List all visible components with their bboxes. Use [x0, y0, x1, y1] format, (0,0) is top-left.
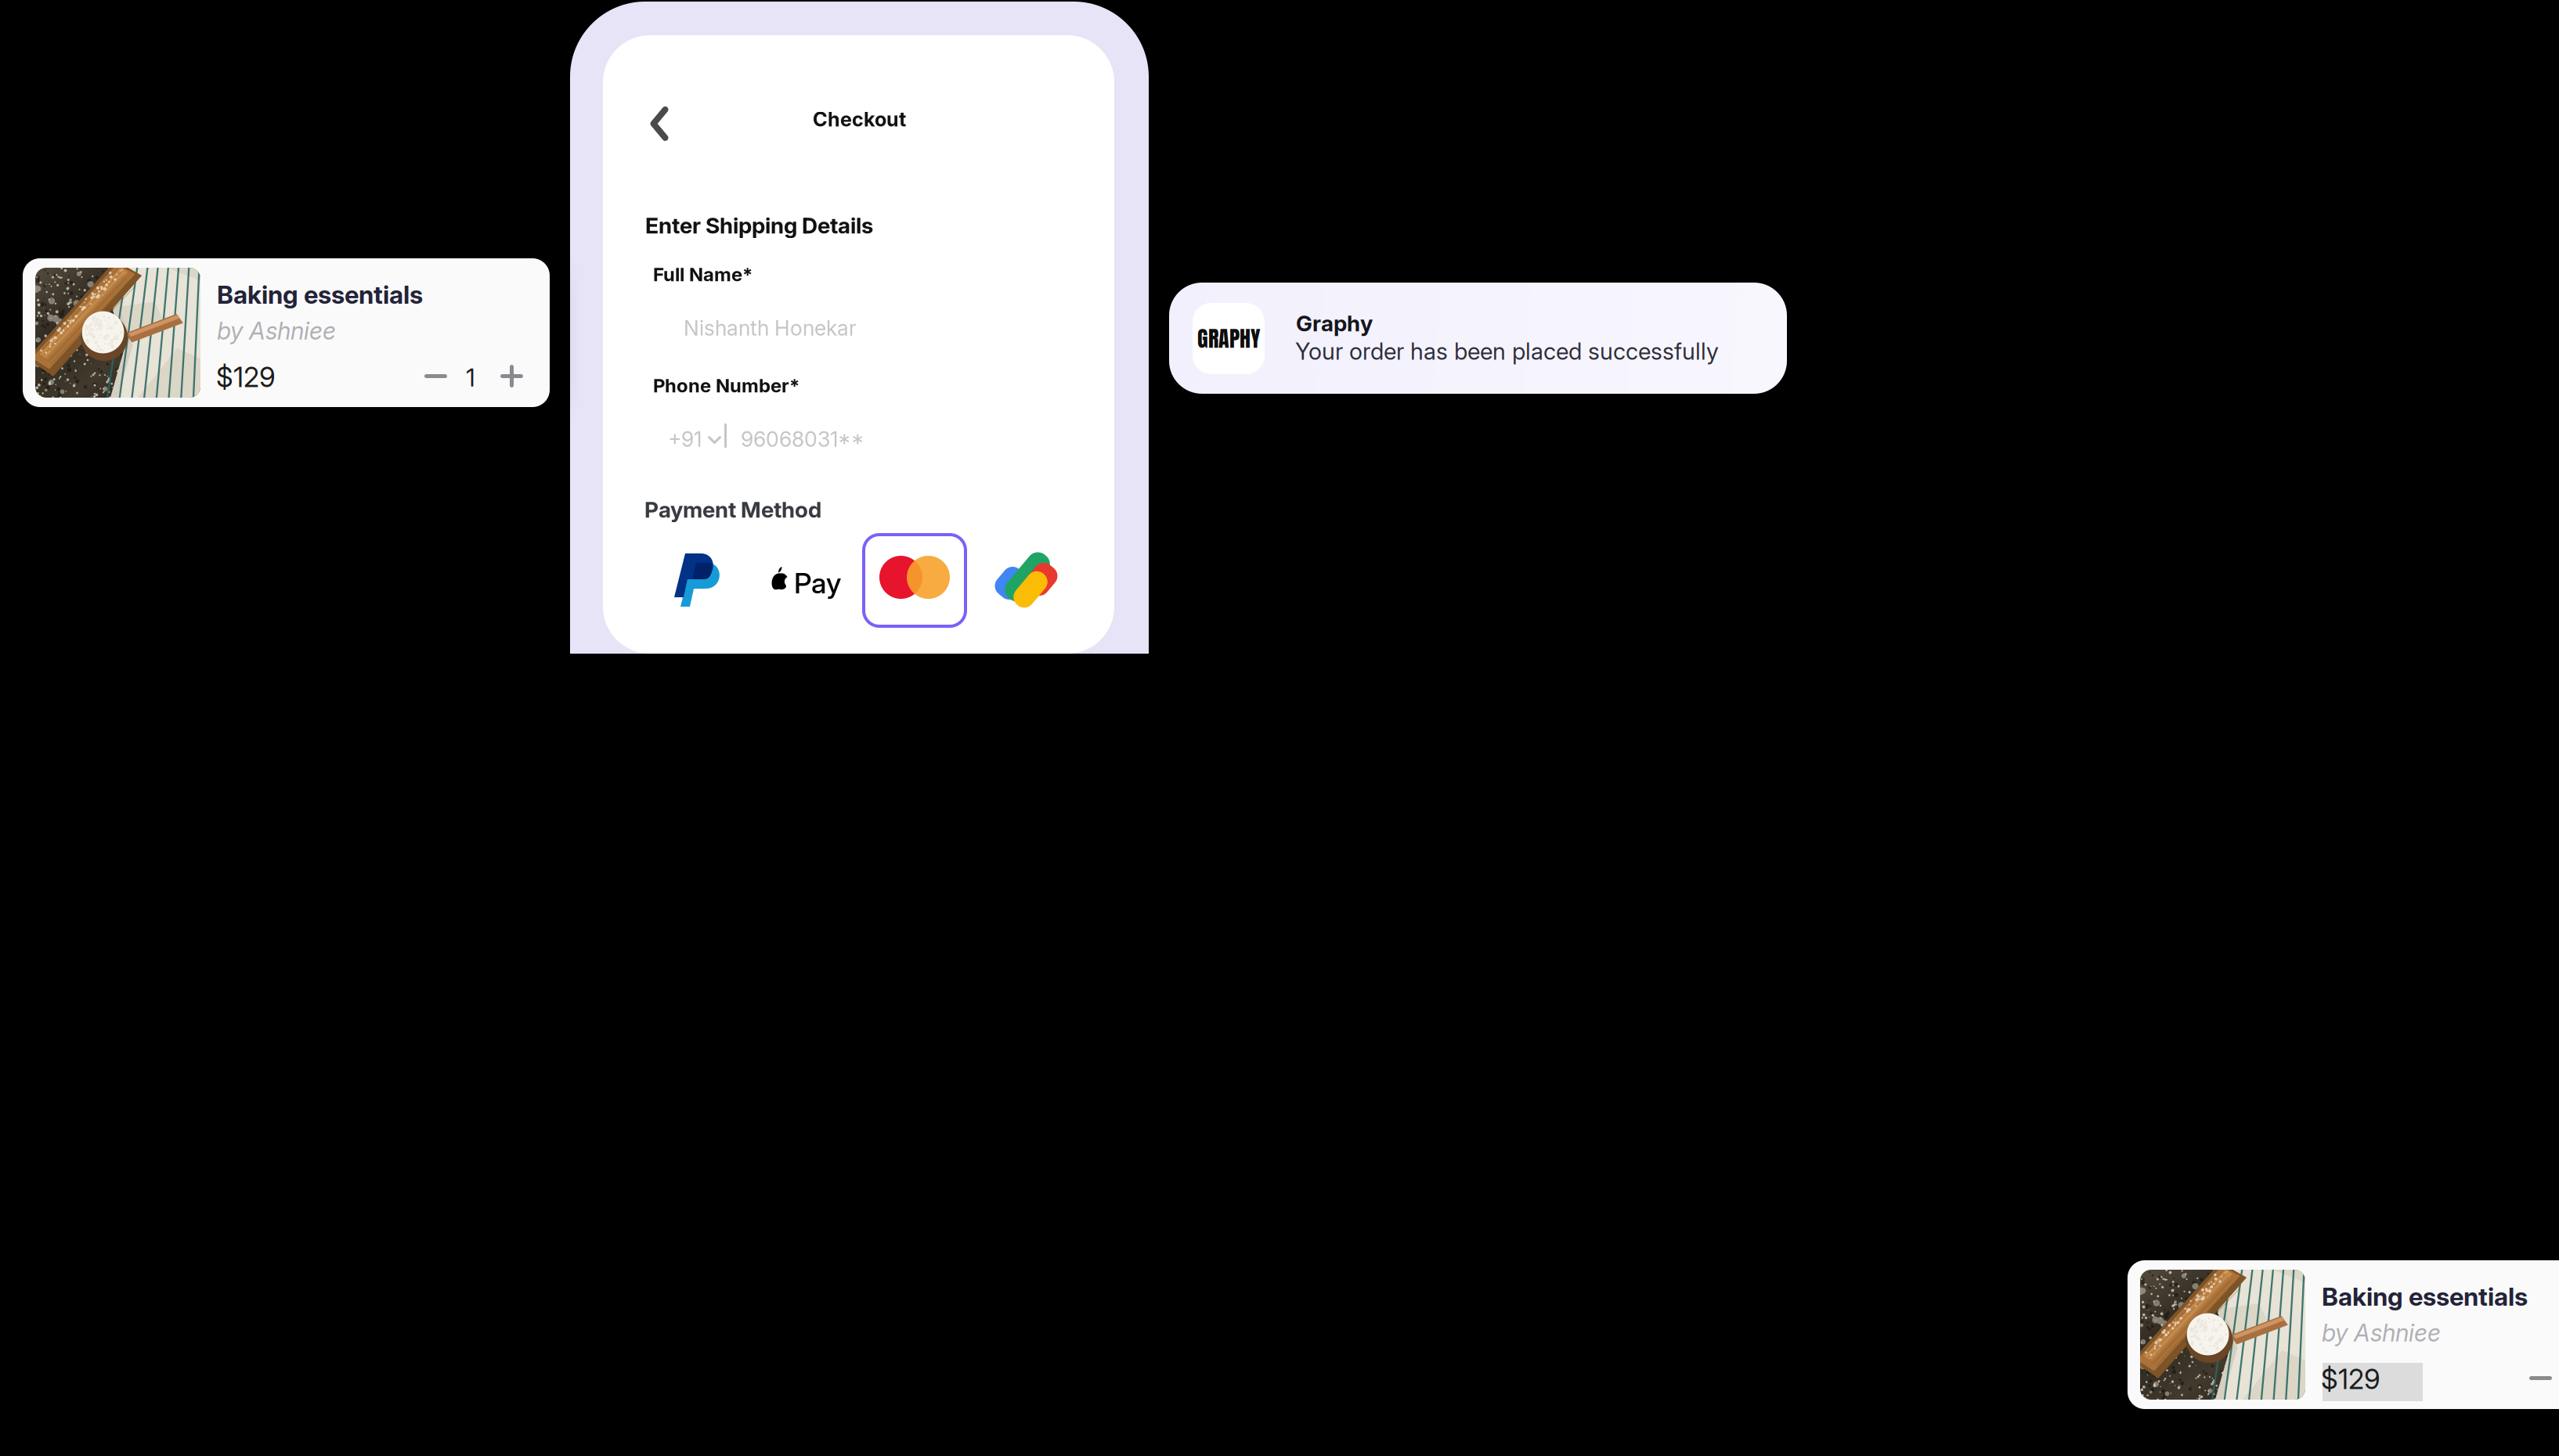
staticText: by Ashniee [217, 316, 336, 345]
button[interactable]: Baking essentials [23, 258, 550, 407]
staticText: 1 [466, 363, 475, 392]
staticText: Baking essentials [217, 279, 423, 310]
staticText: GRAPHY [1197, 322, 1260, 355]
staticText: $129 [2321, 1363, 2380, 1396]
staticText: +91 [668, 427, 702, 452]
button[interactable]: Pay with Mastercard [862, 533, 967, 628]
staticText: Enter Shipping Details [645, 212, 873, 239]
staticText: by Ashniee [2322, 1318, 2441, 1347]
staticText: Checkout [813, 107, 906, 131]
staticText: Your order has been placed successfully [1295, 337, 1719, 365]
button[interactable]: Pay with Apple Pay [771, 566, 839, 597]
staticText: $129 [216, 361, 276, 394]
staticText: Payment Method [644, 496, 821, 523]
staticText: Graphy [1296, 310, 1373, 337]
button[interactable]: Pay with Google Pay [994, 553, 1056, 607]
staticText: 96068031** [741, 427, 864, 452]
button[interactable]: Pay with PayPal [674, 553, 721, 610]
button[interactable]: Baking essentials [2128, 1260, 2559, 1409]
staticText: Full Name* [653, 263, 753, 286]
staticText: Phone Number* [653, 374, 799, 397]
button[interactable]: Back [637, 98, 681, 150]
button[interactable]: GRAPHY [1169, 283, 1787, 394]
staticText: Nishanth Honekar [684, 315, 857, 341]
staticText: Pay [794, 566, 841, 600]
staticText: Baking essentials [2322, 1281, 2528, 1312]
